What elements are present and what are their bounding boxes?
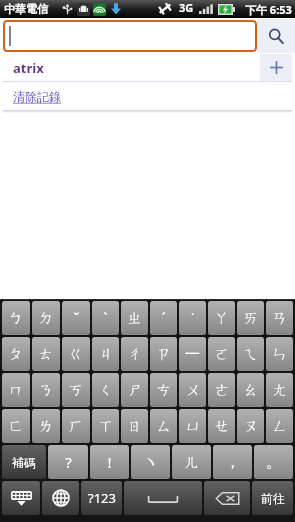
button[interactable]: Space bbox=[124, 481, 202, 515]
button[interactable]: ?123 bbox=[81, 481, 122, 515]
staticText: ㄠ bbox=[243, 381, 259, 400]
button[interactable]: ㄖ bbox=[121, 409, 148, 443]
button[interactable]: ， bbox=[213, 445, 252, 479]
button[interactable]: ㄙ bbox=[150, 409, 177, 443]
staticText: ㄘ bbox=[156, 381, 172, 400]
staticText: ㄛ bbox=[214, 345, 230, 364]
staticText: ㄔ bbox=[127, 345, 143, 364]
button[interactable]: ㄍ bbox=[62, 337, 90, 371]
button[interactable]: ! bbox=[90, 445, 129, 479]
button[interactable]: ㄜ bbox=[208, 373, 235, 407]
button[interactable]: 清除記錄 bbox=[3, 82, 292, 110]
button[interactable]: ? bbox=[48, 445, 88, 479]
staticText: ㄚ bbox=[214, 309, 230, 328]
button[interactable]: ㄕ bbox=[121, 373, 148, 407]
button[interactable]: ㄓ bbox=[121, 301, 148, 335]
button[interactable]: ㄐ bbox=[92, 337, 119, 371]
button[interactable]: ㄦ bbox=[172, 445, 211, 479]
button[interactable]: ㄒ bbox=[92, 409, 119, 443]
button[interactable]: ˇ bbox=[62, 301, 90, 335]
button[interactable]: Delete bbox=[204, 481, 250, 515]
staticText: ㄣ bbox=[272, 345, 288, 364]
button[interactable]: ㄞ bbox=[237, 301, 264, 335]
button[interactable]: ㄥ bbox=[266, 409, 293, 443]
button[interactable]: ㄋ bbox=[32, 373, 60, 407]
button[interactable]: 一 bbox=[179, 337, 206, 371]
staticText: ㄨ bbox=[185, 381, 201, 400]
button[interactable]: Insert suggestion bbox=[260, 54, 292, 81]
button[interactable]: 補碼 bbox=[2, 445, 46, 479]
staticText: 前往 bbox=[261, 491, 285, 506]
staticText: ㄈ bbox=[8, 417, 24, 436]
button[interactable]: ㄡ bbox=[237, 409, 264, 443]
staticText: ㄊ bbox=[38, 345, 54, 364]
staticText: ㄎ bbox=[68, 381, 84, 400]
staticText: ㄅ bbox=[8, 309, 24, 328]
staticText: ˇ bbox=[73, 308, 80, 328]
button[interactable]: 前往 bbox=[252, 481, 293, 515]
button[interactable]: ㄊ bbox=[32, 337, 60, 371]
staticText: ㄢ bbox=[272, 309, 288, 328]
button[interactable]: ㄌ bbox=[32, 409, 60, 443]
button[interactable]: 。 bbox=[254, 445, 293, 479]
staticText: 一 bbox=[185, 345, 200, 364]
staticText: ㄇ bbox=[8, 381, 24, 400]
staticText: ㄆ bbox=[8, 345, 24, 364]
staticText: 3G bbox=[179, 0, 194, 14]
button[interactable]: ㄘ bbox=[150, 373, 177, 407]
button[interactable]: Hide keyboard bbox=[2, 481, 40, 515]
button[interactable]: ˋ bbox=[92, 301, 119, 335]
button[interactable]: ˊ bbox=[150, 301, 177, 335]
button[interactable]: ヽ bbox=[131, 445, 170, 479]
staticText: ㄋ bbox=[38, 381, 54, 400]
button[interactable]: ㄉ bbox=[32, 301, 60, 335]
button[interactable]: ㄩ bbox=[179, 409, 206, 443]
staticText: ˙ bbox=[191, 308, 194, 328]
button[interactable]: ㄣ bbox=[266, 337, 293, 371]
button[interactable]: ㄤ bbox=[266, 373, 293, 407]
staticText: 。 bbox=[266, 453, 281, 472]
button[interactable]: ㄏ bbox=[62, 409, 90, 443]
button[interactable]: ㄚ bbox=[208, 301, 235, 335]
staticText: ㄤ bbox=[272, 381, 288, 400]
button[interactable]: ˙ bbox=[179, 301, 206, 335]
staticText: ㄖ bbox=[127, 417, 143, 436]
staticText: ヽ bbox=[143, 453, 158, 472]
button[interactable]: ㄛ bbox=[208, 337, 235, 371]
staticText: ㄏ bbox=[68, 417, 84, 436]
staticText: ㄓ bbox=[127, 309, 143, 328]
button[interactable]: ㄔ bbox=[121, 337, 148, 371]
button[interactable]: ㄆ bbox=[2, 337, 30, 371]
button[interactable]: ㄇ bbox=[2, 373, 30, 407]
button[interactable]: ㄈ bbox=[2, 409, 30, 443]
staticText: atrix bbox=[13, 59, 260, 77]
button[interactable]: Search bbox=[257, 19, 295, 53]
staticText: ˋ bbox=[103, 308, 108, 328]
button[interactable]: ㄗ bbox=[150, 337, 177, 371]
staticText: ㄥ bbox=[272, 417, 288, 436]
staticText: ㄦ bbox=[184, 453, 200, 472]
staticText: ㄟ bbox=[243, 345, 259, 364]
button[interactable]: ㄑ bbox=[92, 373, 119, 407]
staticText: 中華電信 bbox=[4, 2, 48, 16]
staticText: ㄗ bbox=[156, 345, 172, 364]
button[interactable]: ㄟ bbox=[237, 337, 264, 371]
button[interactable]: Change input language bbox=[42, 481, 79, 515]
staticText: ㄕ bbox=[127, 381, 143, 400]
button[interactable]: ㄢ bbox=[266, 301, 293, 335]
staticText: ㄑ bbox=[98, 381, 114, 400]
button[interactable]: atrix bbox=[3, 54, 292, 81]
button[interactable]: ㄠ bbox=[237, 373, 264, 407]
staticText: 清除記錄 bbox=[13, 89, 61, 104]
button[interactable]: ㄅ bbox=[2, 301, 30, 335]
staticText: ㄝ bbox=[214, 417, 230, 436]
staticText: ㄉ bbox=[38, 309, 54, 328]
staticText: ㄌ bbox=[38, 417, 54, 436]
button[interactable]: ㄎ bbox=[62, 373, 90, 407]
staticText: ?123 bbox=[88, 489, 116, 507]
staticText: 下午 6:53 bbox=[245, 2, 292, 17]
button[interactable] bbox=[3, 20, 257, 52]
button[interactable]: ㄝ bbox=[208, 409, 235, 443]
staticText: ㄐ bbox=[98, 345, 114, 364]
button[interactable]: ㄨ bbox=[179, 373, 206, 407]
